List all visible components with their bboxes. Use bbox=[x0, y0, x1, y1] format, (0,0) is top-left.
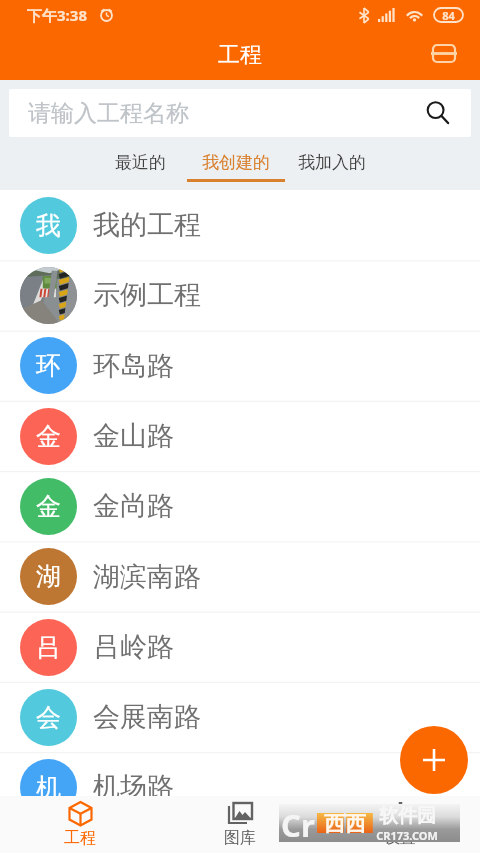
staticText: 图库 bbox=[224, 828, 256, 848]
staticText: 会展南路 bbox=[93, 700, 201, 734]
button[interactable]: 吕 bbox=[0, 612, 480, 682]
button[interactable]: 工程 bbox=[0, 796, 160, 853]
button[interactable]: 请输入工程名称 bbox=[9, 89, 471, 137]
staticText: 环 bbox=[36, 350, 61, 381]
button[interactable]: 我创建的 bbox=[187, 137, 285, 182]
staticText: 示例工程 bbox=[93, 278, 201, 312]
staticText: 我 bbox=[36, 210, 61, 241]
staticText: 我加入的 bbox=[298, 152, 366, 173]
staticText: 金 bbox=[36, 421, 61, 452]
staticText: 机 bbox=[36, 772, 61, 803]
button[interactable]: Add project bbox=[400, 726, 468, 794]
staticText: 西西 bbox=[324, 811, 366, 835]
staticText: 吕 bbox=[36, 632, 61, 663]
staticText: 吕岭路 bbox=[93, 630, 174, 664]
staticText: 金山路 bbox=[93, 419, 174, 453]
button[interactable]: 图库 bbox=[160, 796, 320, 853]
staticText: 工程 bbox=[64, 828, 96, 848]
staticText: CR173.COM bbox=[376, 828, 438, 842]
staticText: 84 bbox=[442, 8, 455, 23]
staticText: 下午3:38 bbox=[27, 5, 87, 25]
button[interactable]: 机 bbox=[0, 752, 480, 822]
staticText: 会 bbox=[36, 702, 61, 733]
button[interactable]: 设置 bbox=[320, 796, 480, 853]
staticText: 请输入工程名称 bbox=[28, 99, 189, 128]
staticText: 我创建的 bbox=[202, 152, 270, 173]
staticText: 工程 bbox=[218, 41, 262, 69]
button[interactable]: 我 bbox=[0, 190, 480, 260]
staticText: 环岛路 bbox=[93, 349, 174, 383]
button[interactable]: Switch layout bbox=[424, 33, 464, 73]
staticText: 湖 bbox=[36, 561, 61, 592]
staticText: 金 bbox=[36, 491, 61, 522]
staticText: 金尚路 bbox=[93, 489, 174, 523]
button[interactable]: 会 bbox=[0, 682, 480, 752]
button[interactable]: 湖 bbox=[0, 541, 480, 612]
button[interactable]: 金 bbox=[0, 401, 480, 471]
button[interactable]: 环 bbox=[0, 330, 480, 401]
staticText: Cr bbox=[281, 804, 315, 842]
staticText: 软件园 bbox=[379, 804, 436, 828]
button[interactable]: 最近的 bbox=[93, 137, 187, 179]
button[interactable]: 我加入的 bbox=[285, 137, 379, 179]
staticText: 最近的 bbox=[115, 152, 166, 173]
staticText: 湖滨南路 bbox=[93, 560, 201, 594]
staticText: 机场路 bbox=[93, 770, 174, 804]
button[interactable]: 示例工程 bbox=[0, 260, 480, 330]
button[interactable]: 金 bbox=[0, 471, 480, 541]
staticText: 我的工程 bbox=[93, 208, 201, 242]
staticText: 设置 bbox=[384, 828, 416, 848]
